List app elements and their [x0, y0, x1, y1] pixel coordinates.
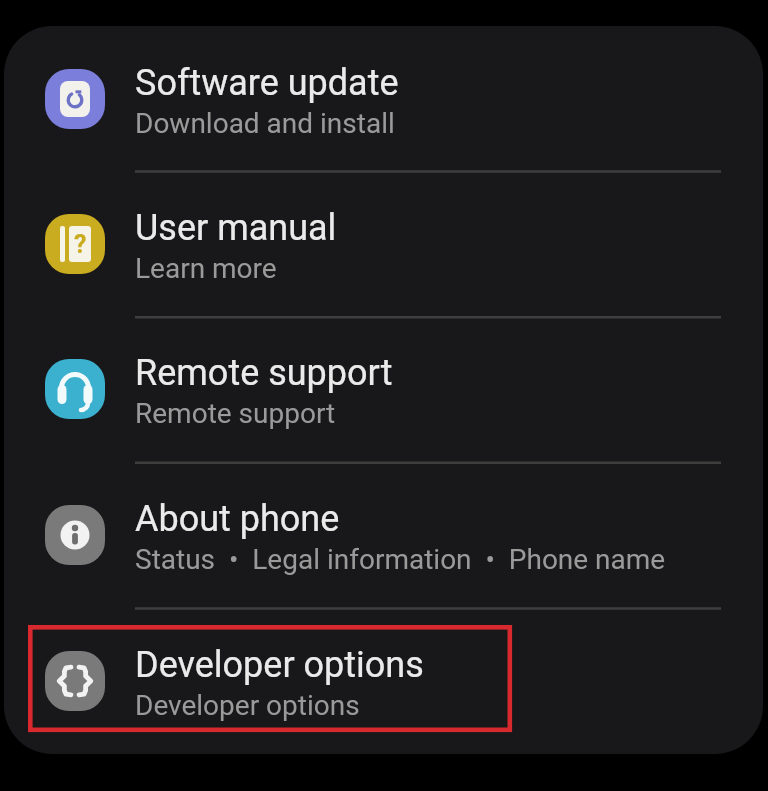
staticText: Learn more: [135, 252, 277, 285]
staticText: About phone: [135, 498, 340, 540]
staticText: Remote support: [135, 352, 393, 394]
staticText: ?: [74, 230, 87, 259]
staticText: Developer options: [135, 689, 360, 722]
button[interactable]: About phone: [4, 462, 763, 608]
staticText: Developer options: [135, 644, 424, 686]
staticText: Download and install: [135, 107, 395, 140]
button[interactable]: Software update: [4, 26, 763, 171]
staticText: Status • Legal information • Phone name: [135, 543, 666, 576]
button[interactable]: ?: [4, 171, 763, 316]
staticText: Software update: [135, 62, 399, 104]
button[interactable]: Developer options: [4, 608, 763, 754]
staticText: User manual: [135, 207, 337, 249]
button[interactable]: Remote support: [4, 316, 763, 462]
staticText: Remote support: [135, 397, 336, 430]
